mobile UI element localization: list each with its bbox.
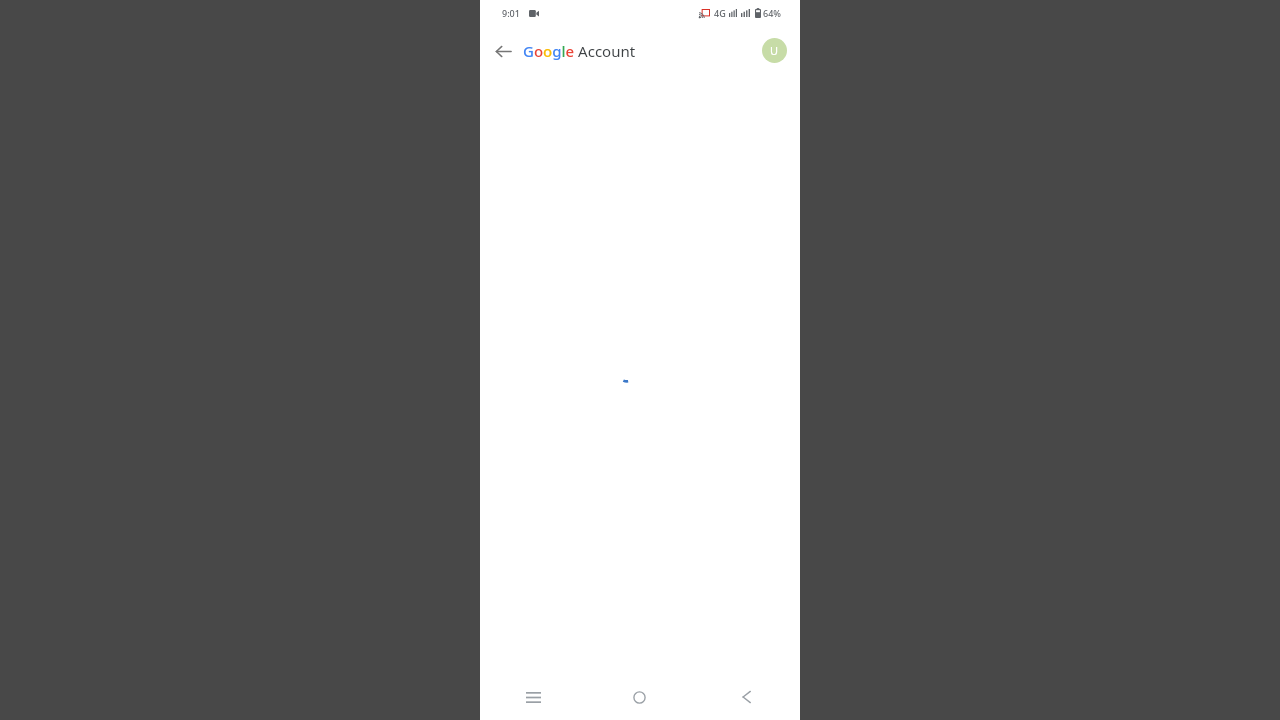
button[interactable]: Recent apps bbox=[480, 674, 586, 720]
staticText: 64% bbox=[763, 7, 781, 19]
button[interactable]: Back bbox=[490, 38, 516, 64]
staticText: Google Account bbox=[523, 41, 636, 61]
button[interactable]: Google Account profile bbox=[762, 38, 787, 63]
staticText: 9:01 bbox=[502, 7, 520, 19]
staticText: U bbox=[770, 43, 779, 58]
staticText: 4G bbox=[714, 7, 726, 19]
button[interactable]: Home bbox=[586, 674, 693, 720]
button[interactable]: Back bbox=[693, 674, 800, 720]
